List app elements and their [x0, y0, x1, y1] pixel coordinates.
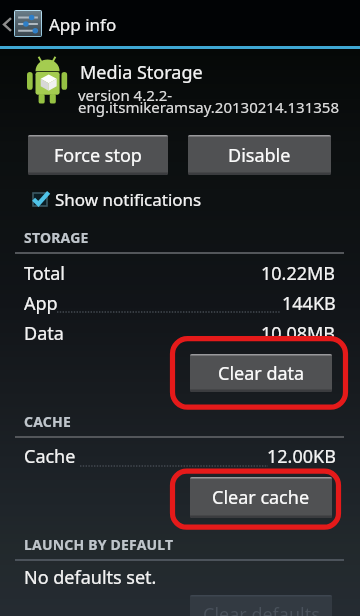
staticText: 10.22MB	[261, 261, 336, 285]
button[interactable]: Navigate up, App info	[0, 0, 360, 46]
staticText: version 4.2.2- eng.itsmikeramsay.2013021…	[78, 85, 339, 118]
staticText: Cache	[24, 444, 76, 468]
button[interactable]: App	[24, 291, 336, 315]
staticText: Show notifications	[55, 188, 202, 211]
button[interactable]: Data	[24, 321, 336, 345]
staticText: 12.00KB	[267, 444, 336, 468]
button[interactable]: Disable	[188, 135, 331, 175]
button[interactable]: Cache	[24, 444, 336, 468]
button[interactable]: Force stop	[28, 135, 168, 175]
staticText: Media Storage	[80, 60, 203, 85]
staticText: No defaults set.	[24, 565, 157, 590]
button[interactable]: Clear cache	[190, 477, 332, 518]
staticText: Total	[24, 261, 65, 285]
staticText: LAUNCH BY DEFAULT	[24, 535, 174, 554]
staticText: Force stop	[54, 143, 142, 168]
staticText: App	[24, 291, 58, 315]
staticText: Clear cache	[212, 485, 310, 510]
button[interactable]: Clear data	[190, 354, 332, 392]
staticText: App info	[49, 13, 117, 36]
staticText: CACHE	[24, 412, 71, 431]
button[interactable]: Total	[24, 261, 336, 285]
staticText: STORAGE	[24, 228, 89, 247]
button[interactable]: Clear defaults	[190, 595, 332, 616]
staticText: Data	[24, 321, 64, 345]
staticText: Clear data	[218, 361, 305, 386]
button[interactable]: Show notifications	[26, 186, 202, 212]
staticText: Disable	[228, 143, 291, 168]
staticText: Clear defaults	[203, 602, 320, 616]
staticText: 144KB	[282, 291, 336, 315]
staticText: 10.08MB	[261, 321, 336, 345]
